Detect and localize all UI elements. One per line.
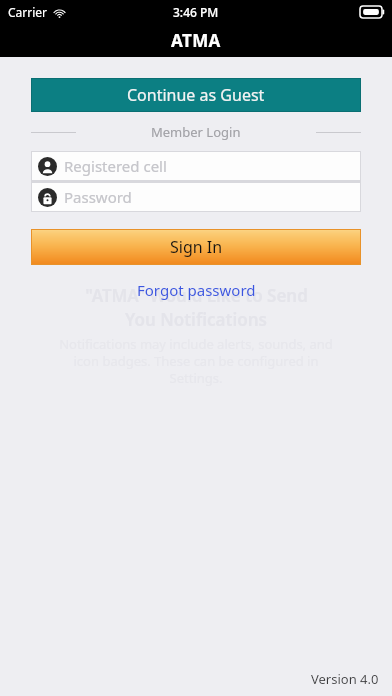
staticText: Version 4.0 (311, 670, 379, 688)
button[interactable]: Registered cell (31, 151, 361, 181)
button[interactable]: Sign In (31, 229, 361, 265)
staticText: ATMA (171, 29, 221, 52)
button[interactable]: Forgot password (129, 277, 264, 303)
button[interactable]: Continue as Guest (31, 78, 361, 112)
staticText: Forgot password (137, 280, 256, 300)
button[interactable]: Password (31, 182, 361, 212)
staticText: You Notifications (125, 308, 267, 331)
staticText: Member Login (151, 123, 241, 141)
staticText: Password (64, 187, 132, 207)
staticText: Sign In (170, 236, 223, 258)
staticText: "ATMA" Would Like to Send (85, 284, 308, 307)
staticText: 3:46 PM (173, 4, 219, 20)
staticText: Continue as Guest (127, 84, 265, 106)
staticText: Registered cell (64, 156, 167, 176)
staticText: Carrier (8, 4, 48, 20)
